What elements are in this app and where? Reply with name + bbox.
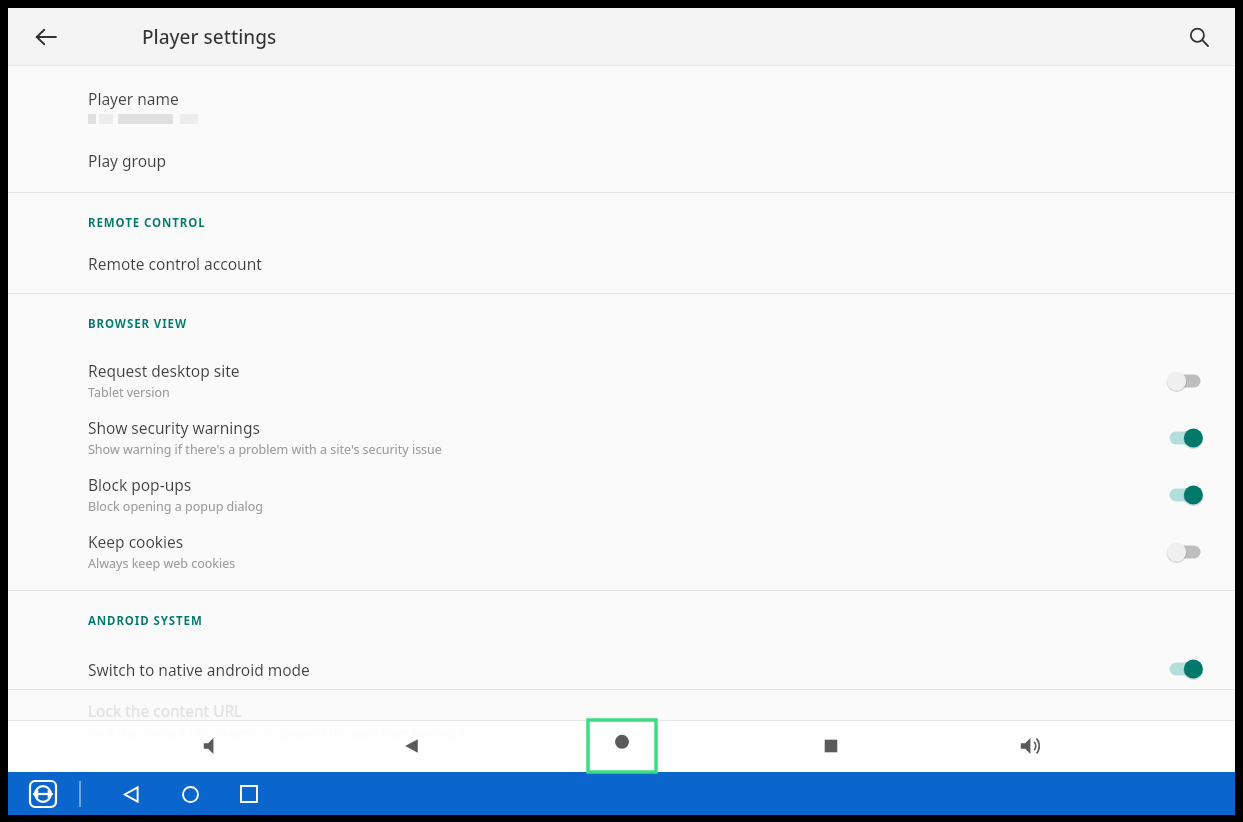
button[interactable]: Home [170,774,210,814]
button[interactable] [1165,369,1205,393]
staticText: Lock the content URL [88,700,243,721]
button[interactable]: Volume up [1006,722,1054,770]
button[interactable] [1165,540,1205,564]
staticText: REMOTE CONTROL [88,215,206,231]
button[interactable]: Volume down [189,722,237,770]
staticText: ANDROID SYSTEM [88,613,203,629]
staticText: Switch to native android mode [88,659,310,680]
button[interactable]: Back [111,774,151,814]
button[interactable]: Player name [8,88,1235,124]
staticText: BROWSER VIEW [88,316,187,332]
button[interactable] [1165,483,1205,507]
staticText: Remote control account [88,253,262,274]
button[interactable]: Request desktop site [8,352,1235,409]
button[interactable]: Recent apps [229,774,269,814]
staticText: Always keep web cookies [88,555,236,572]
staticText: Player name [88,88,179,109]
button[interactable] [1165,657,1205,681]
staticText: Lock the content URL in order to prevent… [88,725,466,742]
button[interactable]: Keep cookies [8,523,1235,580]
button[interactable]: Back [24,15,68,59]
staticText: Show security warnings [88,417,260,438]
staticText: Keep cookies [88,531,184,552]
staticText: Request desktop site [88,360,240,381]
button[interactable]: Previous [388,722,436,770]
button[interactable]: Show security warnings [8,409,1235,466]
staticText: Play group [88,150,167,171]
button[interactable]: Switch to native android mode [8,649,1235,689]
button[interactable]: Block pop-ups [8,466,1235,523]
staticText: Block opening a popup dialog [88,498,264,515]
button[interactable] [1165,426,1205,450]
button[interactable]: Record [588,720,656,772]
staticText: Player settings [142,24,277,50]
staticText: Tablet version [88,384,170,401]
button[interactable]: Search [1177,15,1221,59]
button[interactable]: Remote control account [8,253,1235,274]
button[interactable]: Stop [807,722,855,770]
button[interactable]: Play group [8,150,1235,171]
button[interactable]: Lock the content URL [8,690,1235,742]
button[interactable]: TeamViewer [28,779,58,809]
staticText: Show warning if there's a problem with a… [88,441,442,458]
staticText: Block pop-ups [88,474,192,495]
